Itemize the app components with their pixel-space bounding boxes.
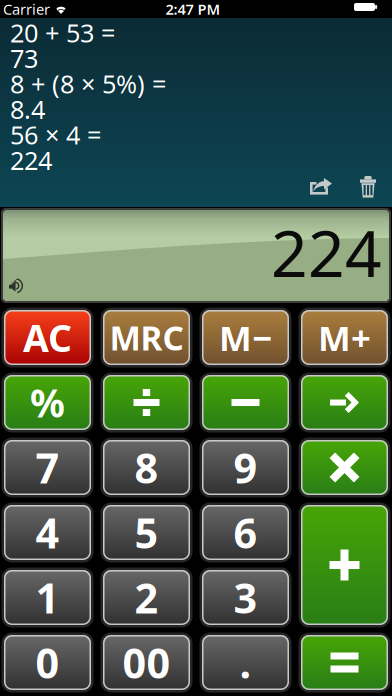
button[interactable]: Clear history bbox=[355, 174, 381, 200]
button[interactable]: Memory recall clear bbox=[103, 310, 190, 365]
staticText: 00 bbox=[122, 635, 170, 690]
staticText: 3 bbox=[233, 570, 257, 625]
button[interactable]: 7 bbox=[4, 440, 91, 495]
button[interactable]: 4 bbox=[4, 505, 91, 560]
staticText: MRC bbox=[109, 315, 183, 360]
button[interactable]: 1 bbox=[4, 570, 91, 625]
button[interactable]: All clear bbox=[4, 310, 91, 365]
button[interactable]: Minus bbox=[202, 375, 289, 430]
staticText: 8 + (8 × 5%) = bbox=[10, 67, 166, 100]
staticText: 73 bbox=[10, 41, 38, 75]
staticText: 56 × 4 = bbox=[10, 118, 101, 151]
button[interactable]: Divide bbox=[103, 375, 190, 430]
staticText: 2:47 PM bbox=[165, 0, 220, 19]
staticText: 1 bbox=[35, 570, 59, 625]
staticText: 224 bbox=[10, 143, 52, 177]
staticText: M− bbox=[219, 314, 272, 360]
button[interactable]: Memory add bbox=[301, 310, 388, 365]
staticText: 0 bbox=[35, 635, 59, 690]
staticText: % bbox=[30, 377, 65, 428]
staticText: 4 bbox=[35, 505, 59, 560]
staticText: M+ bbox=[318, 314, 371, 360]
staticText: AC bbox=[23, 313, 72, 362]
button[interactable]: Share bbox=[307, 174, 337, 200]
button[interactable]: 5 bbox=[103, 505, 190, 560]
staticText: 5 bbox=[134, 505, 158, 560]
button[interactable]: 9 bbox=[202, 440, 289, 495]
button[interactable]: Double zero bbox=[103, 635, 190, 690]
staticText: 224 bbox=[271, 210, 382, 295]
button[interactable]: Decimal point bbox=[202, 635, 289, 690]
button[interactable]: Equals bbox=[301, 635, 388, 690]
button[interactable]: 0 bbox=[4, 635, 91, 690]
button[interactable]: 2 bbox=[103, 570, 190, 625]
button[interactable]: Percent bbox=[4, 375, 91, 430]
button[interactable]: Multiply bbox=[301, 440, 388, 495]
staticText: Carrier bbox=[3, 0, 50, 19]
staticText: 8 bbox=[134, 440, 158, 495]
button[interactable]: Plus bbox=[301, 505, 388, 625]
staticText: 20 + 53 = bbox=[10, 16, 115, 49]
staticText: 7 bbox=[35, 440, 59, 495]
button[interactable]: 6 bbox=[202, 505, 289, 560]
button[interactable]: 3 bbox=[202, 570, 289, 625]
button[interactable]: Memory subtract bbox=[202, 310, 289, 365]
staticText: . bbox=[239, 635, 251, 690]
staticText: 9 bbox=[233, 440, 257, 495]
button[interactable]: Backspace bbox=[301, 375, 388, 430]
staticText: 6 bbox=[233, 505, 257, 560]
button[interactable]: 8 bbox=[103, 440, 190, 495]
staticText: 2 bbox=[134, 570, 158, 625]
staticText: 8.4 bbox=[10, 92, 45, 126]
